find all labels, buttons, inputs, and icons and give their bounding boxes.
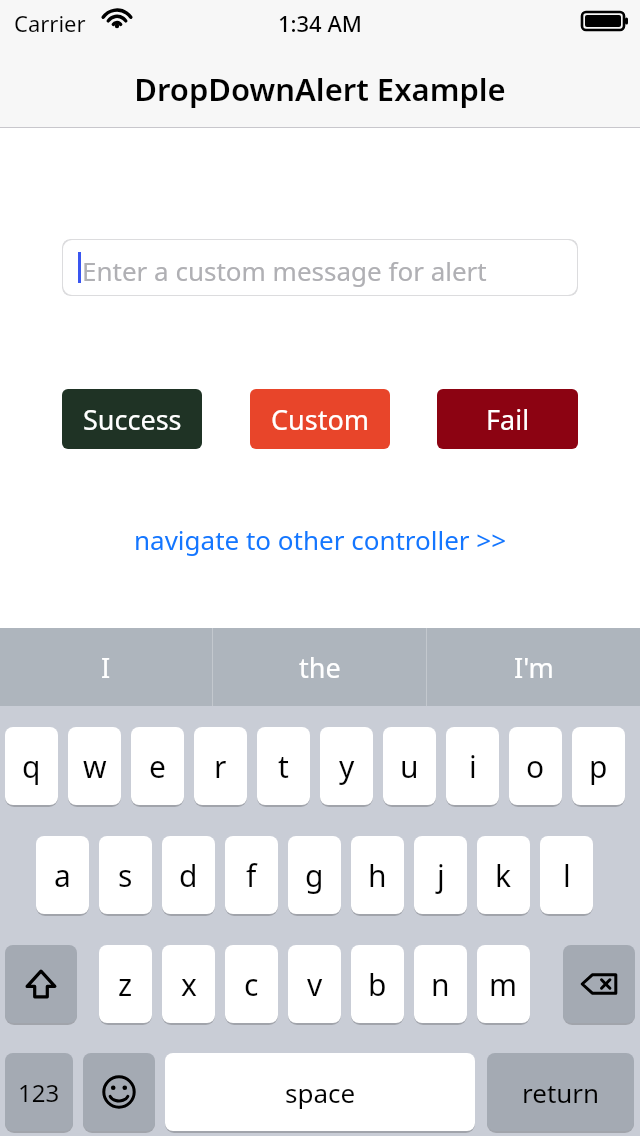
button[interactable]: p bbox=[572, 727, 625, 805]
button[interactable]: y bbox=[320, 727, 373, 805]
staticText: Enter a custom message for alert bbox=[82, 253, 487, 288]
button[interactable]: c bbox=[225, 945, 278, 1023]
button[interactable]: o bbox=[509, 727, 562, 805]
staticText: z bbox=[118, 964, 133, 1005]
button[interactable]: Shift bbox=[5, 945, 77, 1023]
button[interactable]: w bbox=[68, 727, 121, 805]
button[interactable]: I'm bbox=[427, 628, 640, 706]
staticText: j bbox=[437, 855, 445, 896]
button[interactable]: z bbox=[99, 945, 152, 1023]
button[interactable]: return bbox=[487, 1053, 634, 1131]
button[interactable]: e bbox=[131, 727, 184, 805]
button[interactable]: k bbox=[477, 836, 530, 914]
button[interactable]: j bbox=[414, 836, 467, 914]
staticText: the bbox=[299, 649, 341, 686]
button[interactable]: d bbox=[162, 836, 215, 914]
staticText: t bbox=[278, 746, 289, 787]
staticText: m bbox=[489, 964, 518, 1005]
button[interactable]: 123 bbox=[5, 1053, 73, 1131]
staticText: n bbox=[431, 964, 450, 1005]
staticText: c bbox=[244, 964, 259, 1005]
button[interactable]: Fail bbox=[437, 389, 578, 449]
button[interactable]: Enter a custom message for alert bbox=[62, 239, 578, 296]
staticText: y bbox=[339, 746, 355, 787]
staticText: 123 bbox=[18, 1076, 60, 1109]
button[interactable]: Success bbox=[62, 389, 202, 449]
staticText: DropDownAlert Example bbox=[0, 68, 640, 110]
button[interactable]: Custom bbox=[250, 389, 390, 449]
staticText: o bbox=[526, 746, 545, 787]
button[interactable]: the bbox=[213, 628, 426, 706]
button[interactable]: m bbox=[477, 945, 530, 1023]
staticText: I bbox=[101, 649, 111, 686]
staticText: 1:34 AM bbox=[0, 8, 640, 38]
button[interactable]: n bbox=[414, 945, 467, 1023]
staticText: a bbox=[54, 855, 71, 896]
button[interactable]: Emoji bbox=[83, 1053, 155, 1131]
button[interactable]: Backspace bbox=[563, 945, 635, 1023]
staticText: i bbox=[469, 746, 477, 787]
staticText: I'm bbox=[514, 649, 554, 686]
button[interactable]: I bbox=[0, 628, 212, 706]
button[interactable]: t bbox=[257, 727, 310, 805]
staticText: l bbox=[563, 855, 571, 896]
staticText: h bbox=[368, 855, 387, 896]
staticText: navigate to other controller >> bbox=[134, 522, 507, 557]
staticText: r bbox=[214, 746, 227, 787]
button[interactable]: s bbox=[99, 836, 152, 914]
button[interactable]: f bbox=[225, 836, 278, 914]
button[interactable]: space bbox=[165, 1053, 475, 1131]
staticText: space bbox=[285, 1075, 356, 1110]
staticText: p bbox=[589, 746, 608, 787]
staticText: v bbox=[307, 964, 323, 1005]
staticText: w bbox=[83, 746, 107, 787]
staticText: f bbox=[246, 855, 257, 896]
staticText: d bbox=[179, 855, 198, 896]
button[interactable]: r bbox=[194, 727, 247, 805]
button[interactable]: l bbox=[540, 836, 593, 914]
staticText: Success bbox=[83, 401, 182, 438]
button[interactable]: q bbox=[5, 727, 58, 805]
button[interactable]: a bbox=[36, 836, 89, 914]
staticText: x bbox=[181, 964, 197, 1005]
button[interactable]: i bbox=[446, 727, 499, 805]
button[interactable]: x bbox=[162, 945, 215, 1023]
staticText: g bbox=[305, 855, 324, 896]
staticText: q bbox=[22, 746, 41, 787]
button[interactable]: h bbox=[351, 836, 404, 914]
button[interactable]: u bbox=[383, 727, 436, 805]
staticText: s bbox=[118, 855, 133, 896]
button[interactable]: v bbox=[288, 945, 341, 1023]
button[interactable]: navigate to other controller >> bbox=[0, 518, 640, 560]
staticText: k bbox=[495, 855, 512, 896]
staticText: b bbox=[368, 964, 387, 1005]
staticText: Custom bbox=[271, 401, 370, 438]
staticText: Fail bbox=[486, 401, 530, 438]
button[interactable]: g bbox=[288, 836, 341, 914]
staticText: u bbox=[400, 746, 419, 787]
staticText: return bbox=[522, 1075, 600, 1110]
button[interactable]: b bbox=[351, 945, 404, 1023]
staticText: e bbox=[149, 746, 166, 787]
staticText: Carrier bbox=[14, 8, 86, 38]
